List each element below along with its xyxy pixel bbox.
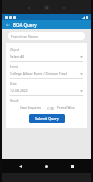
staticText: Save Inquiries [20, 106, 42, 110]
staticText: Select All [10, 54, 25, 59]
button[interactable]: Event [6, 62, 87, 79]
button[interactable]: Date [6, 79, 87, 96]
button[interactable]: Home [42, 162, 51, 171]
button[interactable]: Navigate up [4, 21, 11, 28]
button[interactable]: Object [6, 45, 87, 62]
staticText: Franchise Name [11, 34, 39, 39]
staticText: 12-08-2022 [10, 88, 28, 93]
staticText: Event [10, 65, 18, 69]
staticText: Submit Query [35, 116, 59, 121]
button[interactable]: Franchise Name [8, 32, 85, 40]
button[interactable]: Back [16, 162, 25, 171]
button[interactable]: Toggle period wise [47, 106, 54, 110]
staticText: College Allstar Event / Division Final [10, 71, 67, 76]
button[interactable]: Save Inquiries [19, 105, 43, 111]
staticText: Period Wise [57, 106, 75, 110]
staticText: Object [10, 48, 20, 52]
button[interactable]: Recent apps [68, 162, 77, 171]
button[interactable]: Submit Query [29, 114, 65, 123]
staticText: Date [10, 82, 17, 86]
staticText: BOA Query [13, 22, 37, 28]
staticText: Result [10, 99, 19, 103]
